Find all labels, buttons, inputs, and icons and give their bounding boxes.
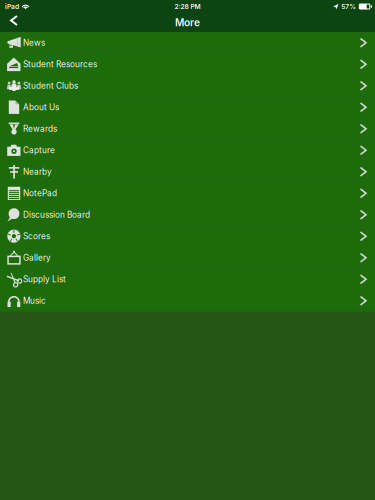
button[interactable]: Nearby xyxy=(0,161,375,182)
button[interactable]: Supply List xyxy=(0,268,375,290)
button[interactable]: Student Resources xyxy=(0,53,375,75)
button[interactable]: Gallery xyxy=(0,247,375,268)
button[interactable]: Back xyxy=(0,13,28,32)
staticText: Student Resources xyxy=(23,59,97,69)
button[interactable]: Student Clubs xyxy=(0,75,375,96)
button[interactable]: Rewards xyxy=(0,118,375,139)
button[interactable]: NotePad xyxy=(0,182,375,204)
staticText: 57% xyxy=(341,2,356,11)
staticText: Supply List xyxy=(23,274,66,284)
button[interactable]: News xyxy=(0,32,375,53)
staticText: Capture xyxy=(23,145,55,155)
button[interactable]: Capture xyxy=(0,139,375,161)
staticText: Student Clubs xyxy=(23,81,78,91)
button[interactable]: Discussion Board xyxy=(0,204,375,225)
staticText: 2:28 PM xyxy=(174,2,200,11)
staticText: Music xyxy=(23,296,46,306)
staticText: Gallery xyxy=(23,253,51,263)
staticText: Nearby xyxy=(23,167,52,177)
staticText: More xyxy=(175,16,200,29)
staticText: About Us xyxy=(23,102,59,112)
button[interactable]: Music xyxy=(0,290,375,311)
staticText: NotePad xyxy=(23,188,57,198)
staticText: Scores xyxy=(23,231,50,241)
staticText: iPad xyxy=(5,2,19,11)
button[interactable]: Scores xyxy=(0,225,375,247)
staticText: Rewards xyxy=(23,124,57,134)
staticText: Discussion Board xyxy=(23,210,90,220)
button[interactable]: About Us xyxy=(0,96,375,118)
staticText: News xyxy=(23,38,45,48)
